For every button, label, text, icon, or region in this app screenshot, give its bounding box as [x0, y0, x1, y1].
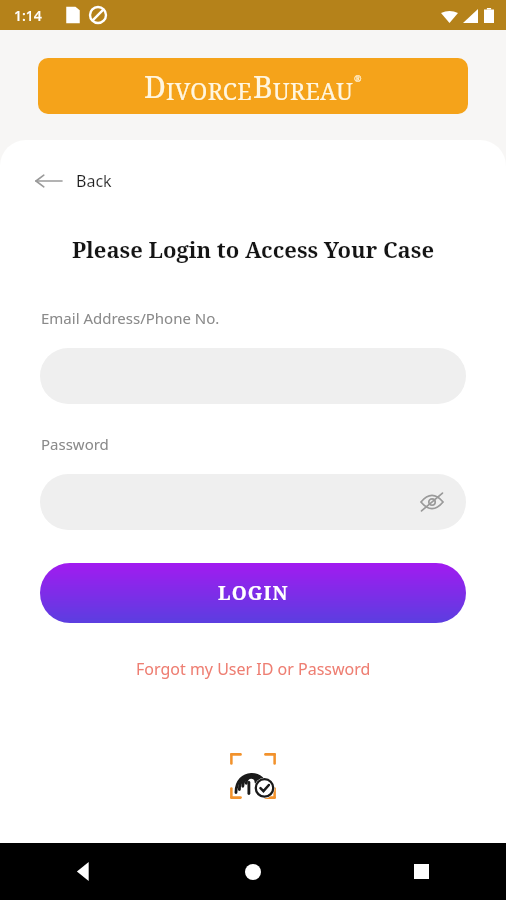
button[interactable]: Recent apps	[337, 843, 506, 900]
button[interactable]: Show password	[40, 474, 466, 530]
staticText: Back	[76, 170, 112, 192]
button[interactable]: Back	[0, 843, 168, 900]
staticText: 1:14	[14, 6, 42, 25]
button[interactable]: LOGIN	[40, 563, 466, 623]
button[interactable]: Back	[36, 170, 112, 192]
button[interactable]: D	[38, 58, 468, 114]
staticText: Please Login to Access Your Case	[20, 234, 486, 264]
staticText: UREAU	[273, 75, 354, 106]
staticText: IVORCE	[166, 75, 253, 106]
button[interactable]: Login with fingerprint	[211, 734, 295, 818]
staticText: Password	[41, 434, 109, 454]
staticText: Forgot my User ID or Password	[136, 658, 371, 680]
button[interactable]: Home	[168, 843, 337, 900]
button[interactable]: Forgot my User ID or Password	[60, 658, 446, 680]
staticText: D	[144, 66, 166, 107]
staticText: LOGIN	[218, 580, 289, 606]
staticText: Email Address/Phone No.	[41, 308, 220, 328]
staticText: ®	[354, 72, 362, 84]
button[interactable]: Show password	[412, 482, 452, 522]
staticText: B	[253, 66, 273, 107]
